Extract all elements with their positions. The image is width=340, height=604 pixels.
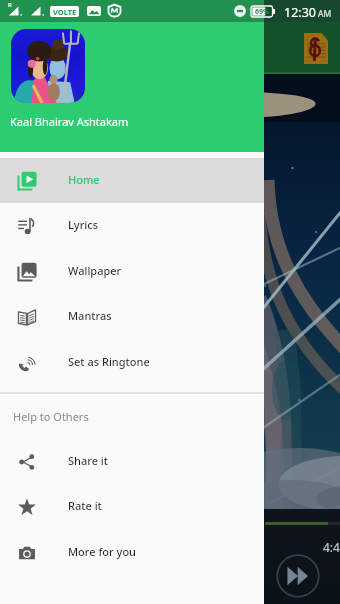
staticText: 69% (255, 7, 270, 17)
staticText: Kaal Bhairav Ashtakam (10, 114, 129, 129)
staticText: More for you (68, 544, 137, 559)
staticText: Wallpaper (68, 263, 122, 278)
staticText: Home (68, 172, 100, 187)
staticText: R (8, 1, 12, 9)
button[interactable]: Share it (0, 439, 264, 484)
button[interactable]: Home (0, 158, 264, 203)
staticText: 4:45 (323, 539, 340, 555)
button[interactable]: Rate it (0, 484, 264, 529)
button[interactable]: Wallpaper (0, 249, 264, 294)
staticText: Lyrics (68, 217, 99, 232)
staticText: Share it (68, 453, 109, 468)
staticText: Set as Ringtone (68, 354, 150, 369)
button[interactable]: Lyrics (0, 203, 264, 248)
staticText: Rate it (68, 498, 102, 513)
staticText: 12:30 (284, 4, 316, 21)
staticText: Help to Others (13, 409, 89, 424)
button[interactable]: More for you (0, 530, 264, 575)
button[interactable]: Set as Ringtone (0, 340, 264, 385)
staticText: VOLTE (53, 7, 77, 17)
button[interactable]: Help to Others (0, 394, 264, 439)
button[interactable]: Mantras (0, 294, 264, 339)
staticText: Mantras (68, 308, 112, 323)
staticText: AM (318, 8, 332, 20)
button[interactable]: Fast forward (276, 554, 320, 598)
